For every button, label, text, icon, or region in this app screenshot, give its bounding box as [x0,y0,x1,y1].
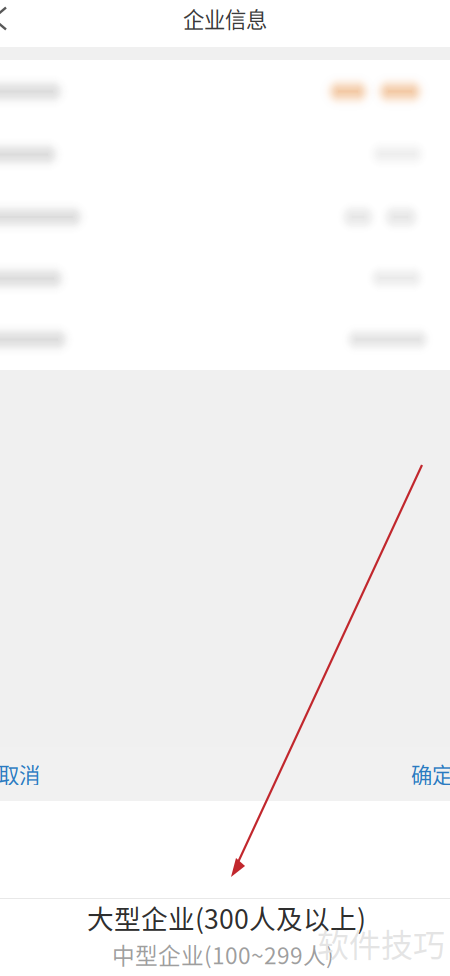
button[interactable] [0,60,450,123]
button[interactable] [0,309,450,370]
staticText: 中型企业(100~299人) [112,938,334,971]
button[interactable] [0,186,450,248]
staticText: 取消 [0,759,40,789]
button[interactable] [0,248,450,309]
staticText: 大型企业(300人及以上) [87,898,366,937]
staticText: 软件技巧 [317,920,445,966]
staticText: 企业信息 [183,3,267,34]
button[interactable]: 确定 [392,747,450,801]
button[interactable]: 取消 [0,747,58,801]
button[interactable]: Back [0,0,17,38]
staticText: 确定 [411,759,450,789]
button[interactable] [0,123,450,186]
